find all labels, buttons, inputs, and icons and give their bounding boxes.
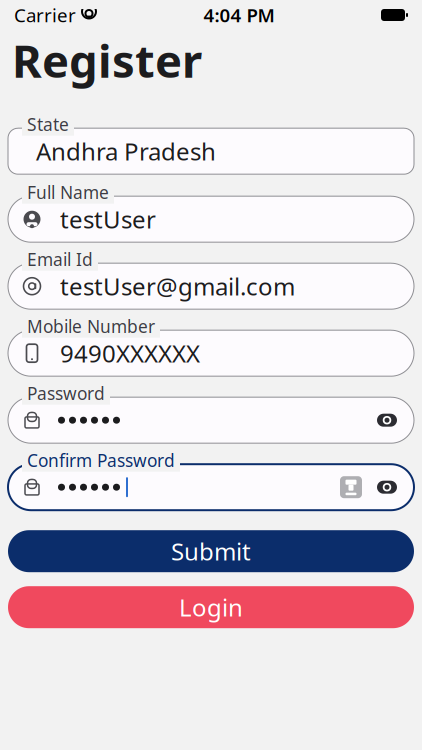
button[interactable]: Autofill password xyxy=(340,476,362,498)
button[interactable]: Login xyxy=(8,586,414,628)
staticText: Mobile Number xyxy=(27,315,155,338)
staticText: Carrier xyxy=(14,3,76,27)
staticText: 4:04 PM xyxy=(203,3,274,27)
button[interactable]: Show password xyxy=(376,412,398,428)
button[interactable]: Submit xyxy=(8,530,414,572)
staticText: Email Id xyxy=(27,248,93,271)
staticText: Full Name xyxy=(27,181,109,204)
staticText: 9490XXXXXX xyxy=(60,337,200,369)
staticText: Password xyxy=(27,382,105,405)
staticText: testUser xyxy=(60,203,156,235)
staticText: Register xyxy=(12,30,202,90)
staticText: testUser@gmail.com xyxy=(60,270,295,302)
staticText: Submit xyxy=(171,535,251,567)
staticText: State xyxy=(27,113,69,136)
staticText: Login xyxy=(179,591,243,623)
staticText: Confirm Password xyxy=(27,449,175,472)
button[interactable]: Show confirm password xyxy=(376,479,398,495)
staticText: Andhra Pradesh xyxy=(36,135,216,167)
